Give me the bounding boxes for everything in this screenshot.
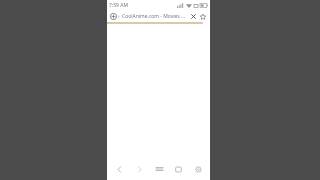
staticText: CoolAnime.com - Movies &… xyxy=(122,13,188,20)
button[interactable]: Bookmark xyxy=(198,12,207,21)
button[interactable]: Tabs xyxy=(169,160,187,178)
button[interactable]: Forward xyxy=(130,160,148,178)
staticText: › xyxy=(118,13,120,20)
staticText: 7:59 AM xyxy=(109,2,129,9)
button[interactable]: Close tab xyxy=(189,12,198,21)
button[interactable]: Home xyxy=(189,160,207,178)
button[interactable]: Menu xyxy=(150,160,168,178)
button[interactable]: Back xyxy=(110,160,128,178)
button[interactable]: › xyxy=(107,10,210,22)
